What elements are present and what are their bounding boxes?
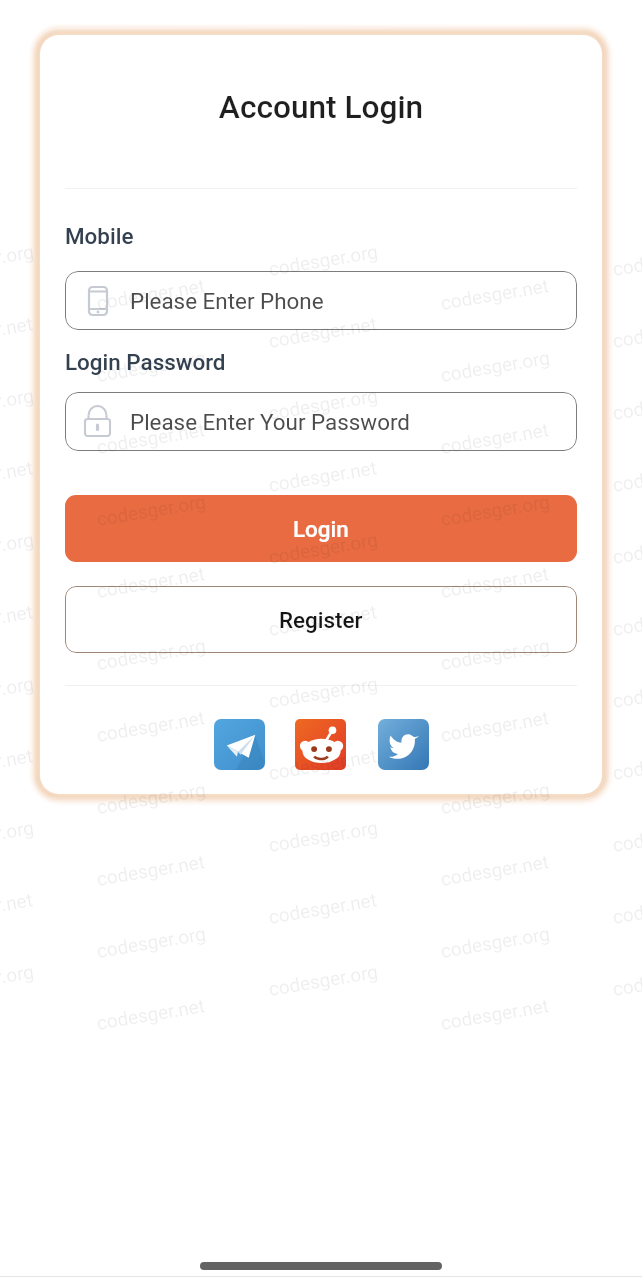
- button[interactable]: Please Enter Your Password: [65, 392, 577, 451]
- staticText: codesger.net: [95, 994, 207, 1034]
- staticText: codesger.org: [0, 960, 36, 1000]
- staticText: codesger.net: [267, 456, 379, 496]
- staticText: codesger.org: [267, 816, 380, 856]
- staticText: codesger.org: [611, 672, 642, 712]
- staticText: codesger.org: [0, 672, 36, 712]
- staticText: Account Login: [40, 89, 602, 126]
- staticText: codesger.net: [439, 994, 551, 1034]
- staticText: codesger.org: [611, 528, 642, 568]
- staticText: codesger.net: [439, 562, 551, 602]
- staticText: codesger.net: [95, 706, 207, 746]
- staticText: codesger.org: [267, 240, 380, 280]
- staticText: Register: [279, 607, 363, 633]
- staticText: codesger.org: [439, 778, 552, 818]
- staticText: codesger.net: [611, 456, 642, 496]
- staticText: codesger.org: [267, 528, 380, 568]
- staticText: codesger.net: [267, 600, 379, 640]
- staticText: codesger.net: [611, 744, 642, 784]
- staticText: codesger.org: [95, 346, 208, 386]
- staticText: codesger.org: [95, 778, 208, 818]
- button[interactable]: Login: [65, 495, 577, 562]
- staticText: codesger.net: [611, 600, 642, 640]
- staticText: Login: [293, 516, 349, 542]
- staticText: codesger.org: [611, 960, 642, 1000]
- staticText: codesger.net: [0, 456, 35, 496]
- staticText: codesger.org: [95, 490, 208, 530]
- staticText: codesger.net: [611, 312, 642, 352]
- staticText: codesger.net: [95, 850, 207, 890]
- staticText: codesger.org: [267, 960, 380, 1000]
- staticText: codesger.net: [439, 850, 551, 890]
- staticText: codesger.net: [267, 888, 379, 928]
- staticText: codesger.org: [0, 384, 36, 424]
- staticText: codesger.org: [267, 384, 380, 424]
- button[interactable]: Telegram: [214, 719, 265, 770]
- staticText: codesger.net: [0, 600, 35, 640]
- staticText: codesger.org: [439, 634, 552, 674]
- staticText: codesger.org: [611, 384, 642, 424]
- staticText: codesger.org: [0, 240, 36, 280]
- staticText: codesger.org: [95, 922, 208, 962]
- staticText: Please Enter Phone: [130, 288, 324, 314]
- staticText: codesger.net: [0, 312, 35, 352]
- staticText: codesger.org: [95, 634, 208, 674]
- staticText: codesger.org: [267, 672, 380, 712]
- staticText: codesger.net: [439, 706, 551, 746]
- button[interactable]: Twitter: [378, 719, 429, 770]
- staticText: codesger.org: [439, 346, 552, 386]
- staticText: codesger.net: [95, 418, 207, 458]
- staticText: codesger.org: [0, 528, 36, 568]
- staticText: codesger.net: [95, 274, 207, 314]
- staticText: codesger.org: [611, 240, 642, 280]
- staticText: codesger.net: [0, 744, 35, 784]
- staticText: codesger.org: [611, 816, 642, 856]
- staticText: codesger.net: [267, 312, 379, 352]
- staticText: codesger.net: [611, 888, 642, 928]
- staticText: codesger.net: [95, 562, 207, 602]
- button[interactable]: Register: [65, 586, 577, 653]
- staticText: Login Password: [65, 349, 226, 375]
- staticText: codesger.net: [0, 888, 35, 928]
- staticText: Mobile: [65, 223, 134, 249]
- staticText: Please Enter Your Password: [130, 409, 410, 435]
- staticText: codesger.org: [439, 490, 552, 530]
- staticText: codesger.net: [439, 274, 551, 314]
- staticText: codesger.net: [267, 744, 379, 784]
- staticText: codesger.org: [0, 816, 36, 856]
- staticText: codesger.org: [439, 922, 552, 962]
- button[interactable]: Please Enter Phone: [65, 271, 577, 330]
- button[interactable]: Reddit: [295, 719, 346, 770]
- staticText: codesger.net: [439, 418, 551, 458]
